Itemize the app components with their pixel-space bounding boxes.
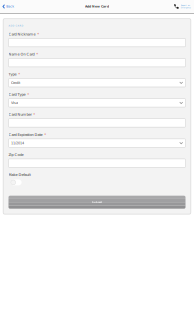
staticText: Visa [11,101,18,105]
staticText: Card Expiration Date [8,133,42,137]
staticText: Card Type [8,92,25,97]
staticText: Back [6,5,14,8]
staticText: Name On Card [8,52,34,56]
staticText: * [44,133,46,137]
staticText: Credit [11,81,20,85]
staticText: Emergency [181,7,191,9]
staticText: Card Number [8,112,31,117]
staticText: * [33,112,35,117]
button[interactable]: Report an [173,0,194,13]
staticText: Make Default [8,173,30,177]
staticText: * [18,72,20,76]
button[interactable]: Submit [8,196,185,209]
staticText: ADD CARD [8,24,23,27]
staticText: Type [8,72,16,76]
staticText: * [27,92,29,97]
staticText: Submit [92,201,102,203]
staticText: * [36,52,38,56]
staticText: * [37,32,39,36]
button[interactable]: Back [0,0,18,13]
button[interactable]: Make Default [10,179,22,185]
staticText: 11/2014 [11,141,24,145]
staticText: Report an [181,4,190,6]
staticText: Zip Code [8,153,23,157]
staticText: Add New Card [85,5,109,8]
staticText: Card Nickname [8,32,35,36]
